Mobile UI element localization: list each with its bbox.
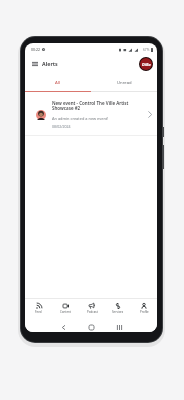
staticText: 00:22	[31, 47, 40, 52]
button[interactable]: Content	[52, 299, 79, 315]
staticText: New event - Control The Ville Artist Sho…	[52, 100, 129, 112]
button[interactable]	[86, 322, 96, 332]
staticText: 67%	[143, 48, 150, 52]
staticText: Profile	[140, 310, 149, 314]
staticText: Services	[112, 310, 124, 314]
button[interactable]: Profile	[131, 299, 157, 315]
staticText: Podcast	[87, 310, 98, 314]
button[interactable]	[31, 60, 39, 68]
button[interactable]: Podcast	[79, 299, 105, 315]
button[interactable]: Unread	[91, 74, 157, 92]
staticText: 08/02/2024	[52, 124, 71, 129]
staticText: Alerts	[42, 60, 58, 67]
staticText: Feed	[35, 310, 42, 314]
button[interactable]: All	[25, 74, 91, 92]
staticText: All	[55, 80, 61, 86]
button[interactable]: Dilla	[139, 57, 153, 71]
button[interactable]	[58, 322, 68, 332]
staticText: An admin created a new event!	[52, 116, 109, 121]
staticText: Unread	[117, 80, 132, 86]
button[interactable]: Feed	[25, 299, 52, 315]
staticText: Dilla	[142, 62, 151, 67]
button[interactable]: New event - Control The Ville Artist Sho…	[25, 92, 157, 129]
button[interactable]: Services	[105, 299, 131, 315]
staticText: Content	[60, 310, 71, 314]
button[interactable]	[114, 322, 124, 332]
